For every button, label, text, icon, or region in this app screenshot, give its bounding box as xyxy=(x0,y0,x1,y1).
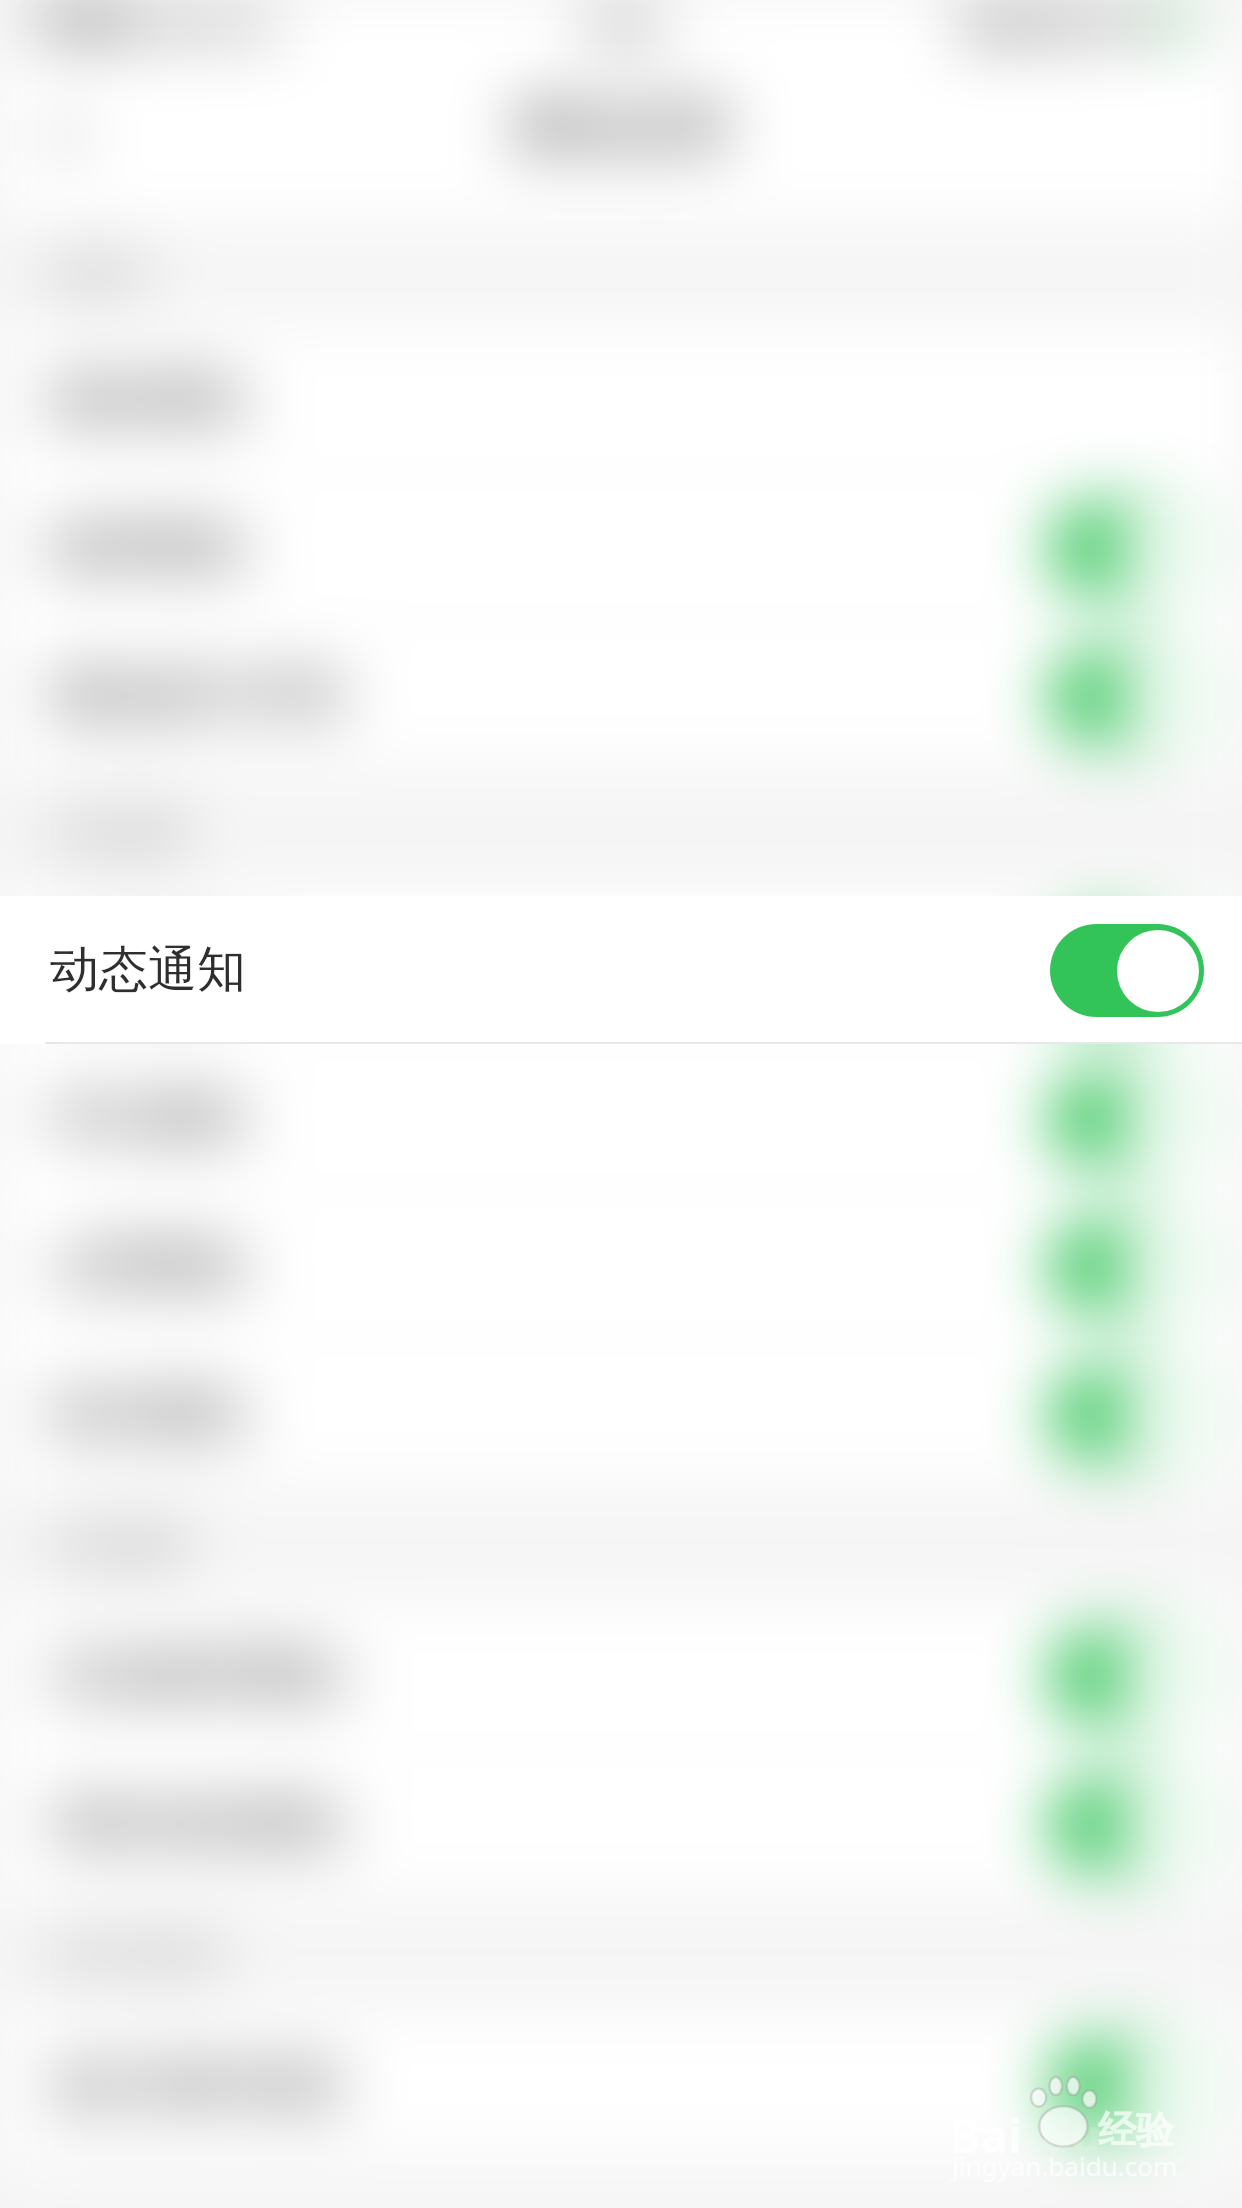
staticText: 动态通知 xyxy=(50,939,246,1001)
button[interactable]: 动态通知 xyxy=(0,896,1242,1044)
button[interactable]: 评论通知 xyxy=(0,1044,1242,1192)
staticText: 接收通知 xyxy=(50,369,246,431)
button[interactable]: Toggle 粉丝通知 xyxy=(1050,1368,1204,1461)
staticText: 粉丝通知 xyxy=(50,1383,246,1445)
button[interactable]: 锁屏通知 xyxy=(0,474,1242,622)
button[interactable]: Toggle 免打扰时间段 xyxy=(1050,2040,1204,2133)
staticText: 点赞通知 xyxy=(50,1235,246,1297)
staticText: 中国移动 xyxy=(26,6,146,44)
staticText: jingyan.baidu.com xyxy=(952,2148,1178,2183)
button[interactable]: 接收通知 xyxy=(0,326,1242,474)
staticText: du xyxy=(1042,2104,1101,2167)
button[interactable]: Toggle 通知显示详情 xyxy=(1050,650,1204,743)
staticText: 动态通知 xyxy=(50,939,246,1001)
staticText: 闹钟 蓝牙 84% xyxy=(966,6,1148,44)
button[interactable]: Toggle 锁屏通知 xyxy=(1050,502,1204,595)
staticText: 系统消息通知 xyxy=(50,1793,344,1855)
staticText: 锁屏通知 xyxy=(50,517,246,579)
button[interactable]: 系统消息通知 xyxy=(0,1750,1242,1898)
staticText: 锁屏通知 xyxy=(50,517,246,579)
button[interactable]: 粉丝通知 xyxy=(0,1340,1242,1488)
staticText: 活动推荐通知 xyxy=(50,1645,344,1707)
button[interactable]: Toggle 点赞通知 xyxy=(1050,1220,1204,1313)
staticText: 通知设置 xyxy=(511,93,731,162)
staticText: 评论通知 xyxy=(50,1087,246,1149)
staticText: 免打扰时间段 xyxy=(50,2055,344,2117)
staticText: 免打扰时间段 xyxy=(50,2055,344,2117)
button[interactable]: Toggle 系统消息通知 xyxy=(1050,1778,1204,1871)
button[interactable]: 免打扰时间段 xyxy=(0,2012,1242,2160)
staticText: 活动推荐通知 xyxy=(50,1645,344,1707)
button[interactable]: 点赞通知 xyxy=(0,1192,1242,1340)
button[interactable]: Toggle 动态通知 xyxy=(1050,924,1204,1017)
staticText: 通知显示详情 xyxy=(50,665,344,727)
button[interactable]: Toggle 评论通知 xyxy=(1050,1072,1204,1165)
staticText: 接收通知 xyxy=(50,369,246,431)
staticText: 通知显示详情 xyxy=(50,665,344,727)
button[interactable]: 通知显示详情 xyxy=(0,622,1242,770)
staticText: 系统消息通知 xyxy=(50,1793,344,1855)
staticText: 点赞通知 xyxy=(50,1235,246,1297)
button[interactable]: 活动推荐通知 xyxy=(0,1602,1242,1750)
staticText: 中国移动 xyxy=(26,6,146,44)
staticText: 粉丝通知 xyxy=(50,1383,246,1445)
staticText: 通知设置 xyxy=(511,93,731,162)
staticText: 评论通知 xyxy=(50,1087,246,1149)
staticText: 经验 xyxy=(1098,2106,1174,2154)
button[interactable]: Toggle 活动推荐通知 xyxy=(1050,1630,1204,1723)
staticText: Bai xyxy=(950,2104,1022,2167)
staticText: 闹钟 蓝牙 84% xyxy=(964,6,1148,44)
